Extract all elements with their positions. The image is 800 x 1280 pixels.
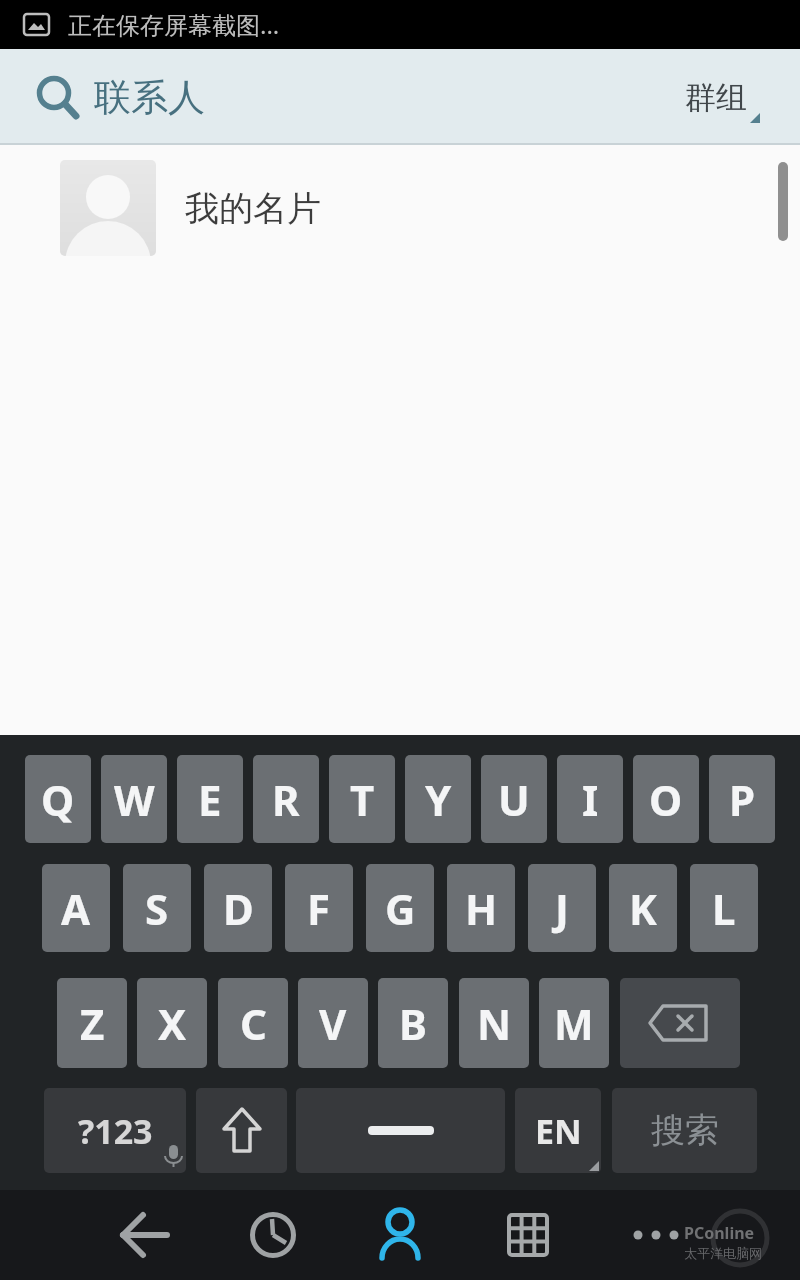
staticText: B <box>399 995 427 1052</box>
button[interactable]: G <box>366 864 434 952</box>
staticText: S <box>145 880 169 937</box>
staticText: Q <box>41 771 75 828</box>
button[interactable]: W <box>101 755 167 843</box>
button[interactable]: 联系人 <box>0 49 800 145</box>
staticText: EN <box>535 1108 582 1154</box>
button[interactable]: T <box>329 755 395 843</box>
button[interactable]: P <box>709 755 775 843</box>
staticText: ?123 <box>78 1108 153 1154</box>
staticText: T <box>350 771 375 828</box>
staticText: X <box>158 995 187 1052</box>
staticText: 群组 <box>685 78 747 117</box>
button[interactable]: Q <box>25 755 91 843</box>
button[interactable] <box>233 1195 313 1275</box>
button[interactable]: 我的名片 <box>0 146 800 270</box>
staticText: I <box>582 771 599 828</box>
button[interactable] <box>296 1088 505 1173</box>
button[interactable] <box>360 1195 440 1275</box>
button[interactable]: R <box>253 755 319 843</box>
staticText: F <box>307 880 331 937</box>
staticText: E <box>198 771 222 828</box>
button[interactable]: O <box>633 755 699 843</box>
staticText: 太平洋电脑网 <box>684 1245 762 1261</box>
staticText: V <box>319 995 347 1052</box>
staticText: 联系人 <box>94 74 205 121</box>
staticText: A <box>61 880 91 937</box>
staticText: 搜索 <box>651 1109 719 1152</box>
staticText: PConline <box>684 1222 755 1244</box>
staticText: 正在保存屏幕截图... <box>68 8 280 41</box>
button[interactable] <box>616 1195 696 1275</box>
staticText: L <box>712 880 736 937</box>
button[interactable] <box>196 1088 287 1173</box>
staticText: U <box>498 771 530 828</box>
button[interactable]: I <box>557 755 623 843</box>
staticText: C <box>240 995 267 1052</box>
staticText: R <box>272 771 300 828</box>
button[interactable]: A <box>42 864 110 952</box>
staticText: P <box>729 771 756 828</box>
staticText: J <box>555 880 569 937</box>
staticText: O <box>649 771 683 828</box>
staticText: M <box>554 995 594 1052</box>
button[interactable]: E <box>177 755 243 843</box>
button[interactable]: ?123 <box>44 1088 186 1173</box>
button[interactable]: M <box>539 978 609 1068</box>
button[interactable]: U <box>481 755 547 843</box>
button[interactable]: EN <box>515 1088 601 1173</box>
button[interactable] <box>105 1195 185 1275</box>
button[interactable]: K <box>609 864 677 952</box>
staticText: G <box>385 880 416 937</box>
button[interactable]: X <box>137 978 207 1068</box>
button[interactable]: H <box>447 864 515 952</box>
button[interactable]: 搜索 <box>612 1088 757 1173</box>
button[interactable]: L <box>690 864 758 952</box>
staticText: W <box>114 771 155 828</box>
button[interactable]: B <box>378 978 448 1068</box>
button[interactable]: Z <box>57 978 127 1068</box>
button[interactable]: C <box>218 978 288 1068</box>
staticText: D <box>223 880 254 937</box>
staticText: K <box>629 880 657 937</box>
staticText: Z <box>80 995 105 1052</box>
button[interactable]: S <box>123 864 191 952</box>
button[interactable]: V <box>298 978 368 1068</box>
button[interactable]: D <box>204 864 272 952</box>
button[interactable]: J <box>528 864 596 952</box>
staticText: Y <box>425 771 452 828</box>
button[interactable]: Y <box>405 755 471 843</box>
button[interactable]: 群组 <box>666 49 766 145</box>
button[interactable] <box>620 978 740 1068</box>
staticText: N <box>477 995 512 1052</box>
button[interactable]: F <box>285 864 353 952</box>
button[interactable] <box>488 1195 568 1275</box>
staticText: 我的名片 <box>185 187 321 230</box>
staticText: H <box>465 880 498 937</box>
button[interactable]: N <box>459 978 529 1068</box>
